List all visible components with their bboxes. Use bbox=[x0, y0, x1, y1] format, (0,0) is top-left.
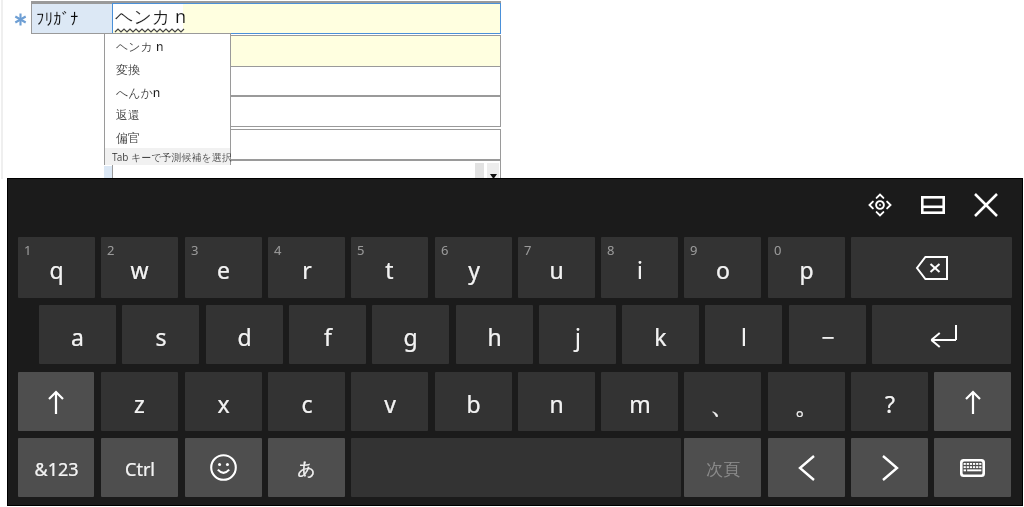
staticText: z bbox=[134, 388, 145, 419]
button[interactable]: a bbox=[39, 305, 116, 364]
button[interactable]: z bbox=[101, 372, 178, 431]
button[interactable]: g bbox=[372, 305, 449, 364]
staticText: 3 bbox=[191, 241, 199, 259]
staticText: e bbox=[217, 254, 230, 285]
staticText: 。 bbox=[794, 389, 820, 422]
button[interactable]: b bbox=[435, 372, 512, 431]
staticText: ? bbox=[885, 388, 895, 419]
button[interactable]: Enter bbox=[872, 305, 1011, 364]
button[interactable]: Move keyboard bbox=[861, 187, 899, 223]
button[interactable]: Backspace bbox=[851, 237, 1012, 298]
button[interactable]: 2 bbox=[101, 237, 178, 298]
staticText: c bbox=[301, 388, 313, 419]
staticText: 、 bbox=[710, 389, 736, 422]
button[interactable]: 。 bbox=[768, 372, 845, 431]
staticText: 7 bbox=[524, 241, 532, 259]
button[interactable]: Close keyboard bbox=[966, 187, 1006, 223]
button[interactable]: Previous bbox=[768, 438, 845, 497]
staticText: g bbox=[403, 321, 418, 352]
staticText: へんかn bbox=[116, 84, 161, 100]
button[interactable]: へんかn bbox=[105, 81, 230, 103]
staticText: y bbox=[468, 254, 480, 285]
staticText: l bbox=[741, 321, 747, 352]
staticText: 返還 bbox=[116, 107, 140, 122]
button[interactable]: − bbox=[789, 305, 866, 364]
staticText: m bbox=[629, 388, 651, 419]
button[interactable]: &123 bbox=[18, 438, 94, 497]
button[interactable]: h bbox=[456, 305, 533, 364]
staticText: h bbox=[487, 321, 502, 352]
button[interactable]: x bbox=[185, 372, 262, 431]
staticText: x bbox=[217, 388, 230, 419]
button[interactable]: 5 bbox=[351, 237, 428, 298]
button[interactable]: ? bbox=[851, 372, 928, 431]
staticText: 変換 bbox=[116, 62, 140, 77]
button[interactable]: Ctrl bbox=[101, 438, 178, 497]
staticText: 5 bbox=[357, 241, 365, 259]
button[interactable]: Tab キーで予測候補を選択 bbox=[105, 148, 230, 165]
button[interactable]: 次頁 bbox=[684, 438, 761, 497]
button[interactable]: 1 bbox=[18, 237, 95, 298]
staticText: p bbox=[799, 254, 814, 285]
button[interactable]: c bbox=[268, 372, 345, 431]
button[interactable]: Shift bbox=[934, 372, 1011, 431]
button[interactable]: 8 bbox=[601, 237, 678, 298]
button[interactable]: j bbox=[539, 305, 616, 364]
button[interactable]: Dock keyboard bbox=[912, 187, 954, 223]
button[interactable]: 4 bbox=[268, 237, 345, 298]
staticText: r bbox=[302, 254, 312, 285]
staticText: w bbox=[130, 254, 149, 285]
button[interactable]: s bbox=[122, 305, 199, 364]
staticText: n bbox=[549, 388, 564, 419]
staticText: ヘンカ n bbox=[115, 4, 187, 29]
staticText: 0 bbox=[774, 241, 782, 259]
button[interactable]: l bbox=[705, 305, 782, 364]
staticText: 偏官 bbox=[116, 130, 140, 145]
button[interactable]: 、 bbox=[684, 372, 761, 431]
staticText: a bbox=[71, 321, 84, 352]
staticText: &123 bbox=[34, 457, 79, 482]
button[interactable]: n bbox=[518, 372, 595, 431]
staticText: o bbox=[716, 254, 730, 285]
staticText: 8 bbox=[607, 241, 615, 259]
staticText: u bbox=[549, 254, 564, 285]
staticText: q bbox=[49, 254, 64, 285]
button[interactable]: Next bbox=[851, 438, 928, 497]
staticText: 次頁 bbox=[706, 459, 740, 480]
button[interactable]: 3 bbox=[185, 237, 262, 298]
button[interactable]: 0 bbox=[768, 237, 845, 298]
button[interactable]: v bbox=[351, 372, 428, 431]
button[interactable]: Keyboard layout bbox=[934, 438, 1011, 497]
button[interactable]: 6 bbox=[435, 237, 512, 298]
staticText: 4 bbox=[274, 241, 282, 259]
button[interactable]: Shift bbox=[18, 372, 94, 431]
staticText: k bbox=[654, 321, 667, 352]
button[interactable]: f bbox=[289, 305, 366, 364]
staticText: Tab キーで予測候補を選択 bbox=[112, 150, 232, 164]
button[interactable]: 変換 bbox=[105, 58, 230, 80]
staticText: あ bbox=[297, 458, 316, 481]
staticText: j bbox=[575, 321, 581, 352]
staticText: 9 bbox=[690, 241, 698, 259]
button[interactable]: 7 bbox=[518, 237, 595, 298]
staticText: 1 bbox=[24, 241, 32, 259]
button[interactable]: m bbox=[601, 372, 678, 431]
button[interactable]: 偏官 bbox=[105, 126, 230, 148]
staticText: ヘンカ n bbox=[116, 38, 164, 54]
staticText: 2 bbox=[107, 241, 115, 259]
button[interactable]: 返還 bbox=[105, 103, 230, 125]
staticText: i bbox=[637, 254, 643, 285]
staticText: d bbox=[237, 321, 252, 352]
button[interactable]: d bbox=[206, 305, 283, 364]
staticText: − bbox=[821, 321, 835, 352]
button[interactable]: Emoji bbox=[185, 438, 262, 497]
button[interactable]: ヘンカ n bbox=[105, 35, 230, 57]
staticText: s bbox=[155, 321, 167, 352]
staticText: 6 bbox=[441, 241, 449, 259]
button[interactable]: k bbox=[622, 305, 699, 364]
staticText: b bbox=[466, 388, 481, 419]
button[interactable]: 9 bbox=[684, 237, 761, 298]
staticText: Ctrl bbox=[125, 457, 155, 482]
button[interactable]: あ bbox=[268, 438, 345, 497]
